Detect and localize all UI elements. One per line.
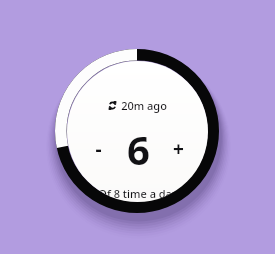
button[interactable]: Sync now (67, 61, 208, 202)
button[interactable]: Sync now (104, 97, 171, 114)
other: Sync now (108, 101, 117, 110)
staticText: 20m ago (121, 98, 167, 113)
staticText: + (173, 136, 184, 162)
button[interactable]: Decrease count (82, 133, 114, 165)
staticText: Of 8 time a day (98, 186, 178, 201)
staticText: 6 (127, 122, 150, 176)
staticText: - (95, 136, 102, 162)
button[interactable]: Increase count (162, 133, 194, 165)
